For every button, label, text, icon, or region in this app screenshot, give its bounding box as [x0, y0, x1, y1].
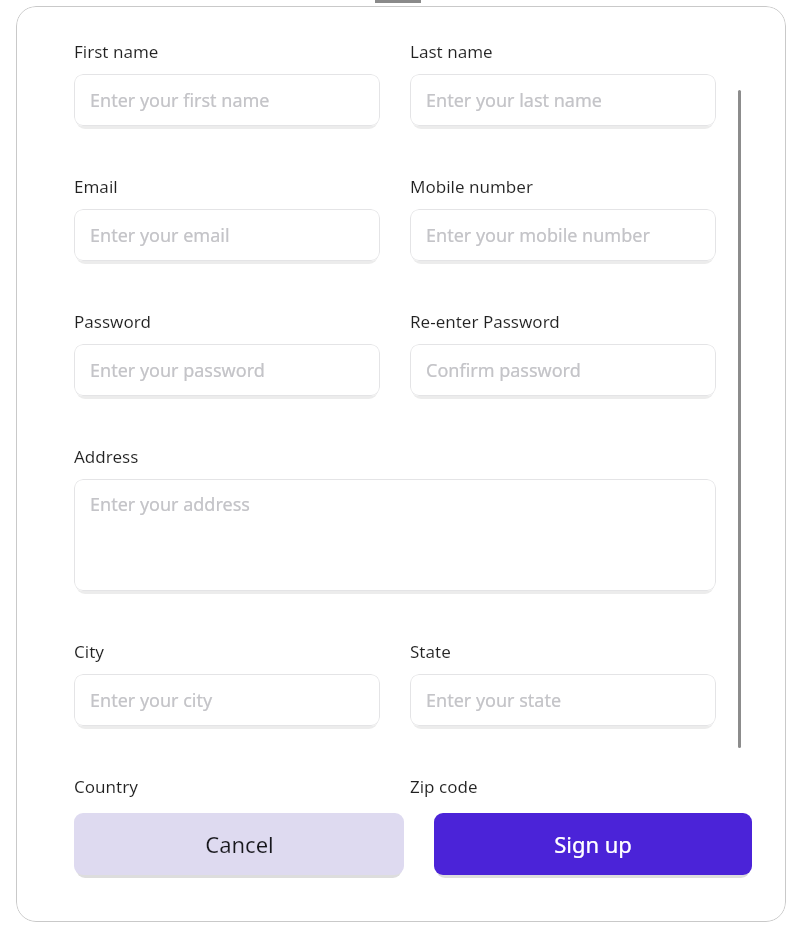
button[interactable]: Enter your mobile number [410, 209, 716, 261]
button[interactable]: Cancel [74, 813, 404, 875]
staticText: Re-enter Password [410, 310, 560, 333]
staticText: Password [74, 310, 151, 333]
staticText: First name [74, 40, 159, 63]
staticText: Enter your mobile number [426, 223, 650, 248]
staticText: Country [74, 775, 138, 798]
staticText: Enter your city [90, 688, 213, 713]
button[interactable]: Enter your email [74, 209, 380, 261]
button[interactable]: Enter your first name [74, 74, 380, 126]
button[interactable]: Enter your password [74, 344, 380, 396]
staticText: Cancel [205, 829, 274, 859]
staticText: Enter your email [90, 223, 230, 248]
staticText: Sign up [554, 829, 632, 859]
button[interactable]: Sign up [434, 813, 752, 875]
staticText: Enter your first name [90, 88, 270, 113]
staticText: Enter your password [90, 358, 265, 383]
staticText: Zip code [410, 775, 478, 798]
staticText: Last name [410, 40, 493, 63]
staticText: State [410, 640, 451, 663]
staticText: Confirm password [426, 358, 581, 383]
button[interactable]: Confirm password [410, 344, 716, 396]
staticText: City [74, 640, 104, 663]
staticText: Email [74, 175, 118, 198]
button[interactable]: Enter your city [74, 674, 380, 726]
staticText: Address [74, 445, 139, 468]
button[interactable]: Enter your state [410, 674, 716, 726]
button[interactable]: Enter your address [74, 479, 716, 591]
staticText: Enter your state [426, 688, 562, 713]
button[interactable]: Enter your last name [410, 74, 716, 126]
staticText: Mobile number [410, 175, 533, 198]
staticText: Enter your last name [426, 88, 602, 113]
staticText: Enter your address [90, 492, 250, 517]
